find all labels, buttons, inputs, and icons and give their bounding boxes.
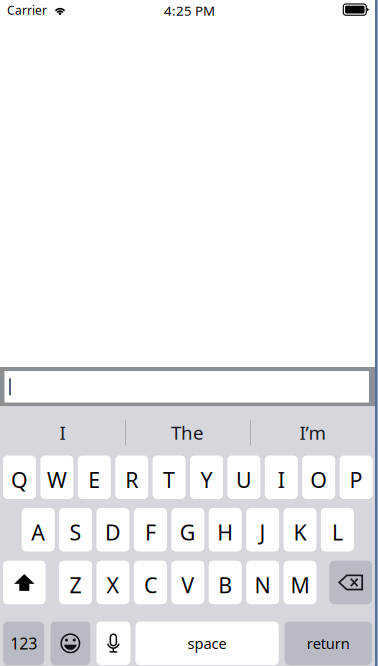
button[interactable]: I xyxy=(265,455,298,499)
button[interactable]: 123 xyxy=(3,622,44,665)
staticText: Z xyxy=(70,571,82,599)
staticText: B xyxy=(218,571,232,599)
button[interactable]: C xyxy=(134,561,167,604)
staticText: M xyxy=(290,571,309,599)
button[interactable]: N xyxy=(246,561,279,604)
staticText: D xyxy=(105,518,121,546)
staticText: Y xyxy=(200,465,212,494)
button[interactable]: D xyxy=(96,508,129,551)
staticText: I xyxy=(278,465,285,494)
staticText: X xyxy=(106,571,119,599)
staticText: W xyxy=(47,465,67,494)
button[interactable]: I xyxy=(0,410,124,454)
button[interactable]: A xyxy=(22,508,55,551)
button[interactable]: M xyxy=(283,561,316,604)
button[interactable]: Dictation xyxy=(96,622,130,665)
button[interactable]: F xyxy=(134,508,167,551)
button[interactable]: Z xyxy=(59,561,92,604)
button[interactable]: Emoji xyxy=(50,622,90,665)
button[interactable]: L xyxy=(321,508,354,551)
button[interactable]: return xyxy=(285,622,372,665)
button[interactable]: O xyxy=(302,455,335,499)
button[interactable]: E xyxy=(78,455,111,499)
button[interactable]: space xyxy=(135,622,279,665)
button[interactable]: Shift xyxy=(3,561,46,604)
button[interactable]: R xyxy=(115,455,148,499)
staticText: T xyxy=(163,465,175,494)
staticText: The xyxy=(171,420,204,445)
staticText: C xyxy=(144,571,157,599)
button[interactable]: Q xyxy=(3,455,36,499)
button[interactable]: T xyxy=(153,455,186,499)
staticText: R xyxy=(125,465,138,494)
staticText: G xyxy=(180,518,196,546)
staticText: F xyxy=(145,518,156,546)
staticText: V xyxy=(181,571,194,599)
button[interactable]: X xyxy=(96,561,129,604)
staticText: N xyxy=(255,571,271,599)
staticText: K xyxy=(293,518,306,546)
staticText: Q xyxy=(11,465,28,494)
button[interactable]: B xyxy=(209,561,242,604)
staticText: J xyxy=(260,518,266,546)
button[interactable]: J xyxy=(246,508,279,551)
button[interactable]: W xyxy=(40,455,73,499)
button[interactable]: V xyxy=(171,561,204,604)
staticText: space xyxy=(188,634,227,653)
staticText: return xyxy=(307,634,350,653)
staticText: A xyxy=(31,518,45,546)
button[interactable]: Delete xyxy=(329,561,372,604)
button[interactable]: H xyxy=(209,508,242,551)
staticText: 123 xyxy=(10,633,37,654)
staticText: I xyxy=(59,420,65,445)
staticText: I’m xyxy=(299,420,325,445)
button[interactable]: S xyxy=(59,508,92,551)
staticText: S xyxy=(70,518,82,546)
staticText: Carrier xyxy=(7,2,47,18)
button[interactable]: K xyxy=(283,508,316,551)
staticText: 4:25 PM xyxy=(164,2,215,19)
button[interactable]: Y xyxy=(190,455,223,499)
button[interactable]: G xyxy=(171,508,204,551)
staticText: L xyxy=(332,518,343,546)
staticText: O xyxy=(310,465,327,494)
button[interactable]: P xyxy=(340,455,373,499)
staticText: P xyxy=(350,465,363,494)
staticText: U xyxy=(236,465,252,494)
staticText: E xyxy=(88,465,100,494)
button[interactable]: I’m xyxy=(250,410,374,454)
staticText: H xyxy=(217,518,233,546)
button[interactable]: U xyxy=(227,455,260,499)
button[interactable]: The xyxy=(125,410,249,454)
